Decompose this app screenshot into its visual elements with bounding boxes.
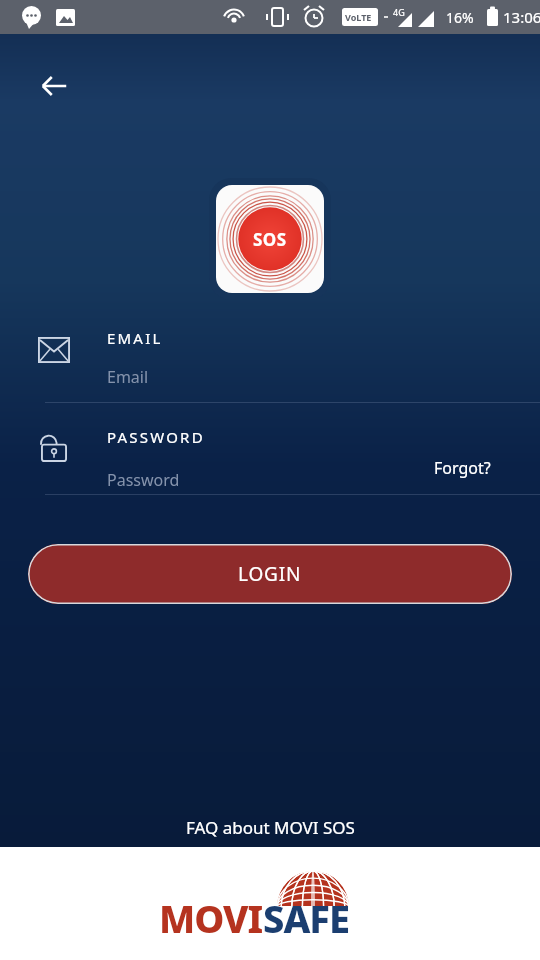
button[interactable]: FAQ about MOVI SOS: [176, 812, 365, 843]
staticText: Forgot?: [434, 457, 491, 479]
staticText: MOVI: [159, 892, 263, 944]
staticText: 13:06: [503, 7, 540, 27]
staticText: LOGIN: [238, 561, 302, 587]
staticText: FAQ about MOVI SOS: [186, 816, 355, 839]
staticText: Password: [107, 469, 180, 491]
staticText: SAFE: [263, 892, 350, 944]
button[interactable]: MoviSafe: [155, 864, 385, 950]
button[interactable]: Back: [28, 60, 80, 112]
staticText: EMAIL: [107, 328, 163, 348]
staticText: VoLTE: [345, 11, 372, 23]
staticText: 16%: [446, 8, 474, 27]
button[interactable]: SOS: [216, 185, 324, 293]
button[interactable]: Forgot?: [430, 453, 495, 483]
staticText: SOS: [253, 228, 287, 251]
button[interactable]: LOGIN: [28, 544, 512, 604]
staticText: Email: [107, 366, 149, 388]
staticText: PASSWORD: [107, 427, 205, 447]
staticText: 4G: [393, 6, 405, 18]
